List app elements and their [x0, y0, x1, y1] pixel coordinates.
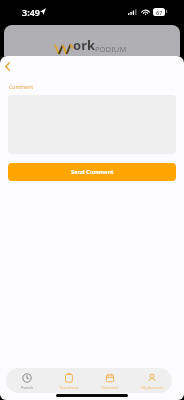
staticText: Send Comment: [71, 168, 114, 176]
button[interactable]: Back: [0, 58, 15, 74]
button[interactable]: Send Comment: [8, 163, 176, 181]
button[interactable]: Punch: [6, 368, 47, 393]
staticText: ork: [73, 36, 95, 54]
staticText: My Account: [141, 385, 163, 390]
staticText: Punch: [21, 385, 33, 390]
button[interactable]: Timesheet: [48, 368, 89, 393]
staticText: Timesheet: [59, 385, 79, 390]
staticText: Schedule: [101, 385, 119, 390]
staticText: 67: [156, 9, 163, 16]
button[interactable]: Schedule: [89, 368, 130, 393]
button[interactable]: My Account: [131, 368, 172, 393]
staticText: PODIUM: [95, 44, 127, 54]
staticText: 3:49: [22, 6, 40, 18]
staticText: Comment: [9, 83, 34, 90]
